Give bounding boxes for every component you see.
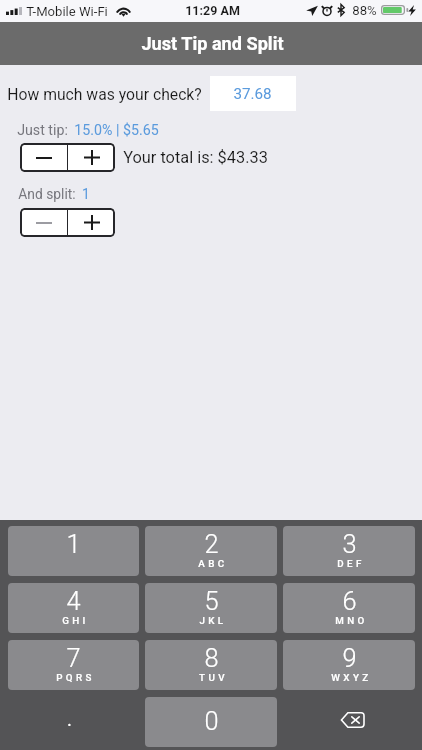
staticText: Your total is: $43.33 bbox=[123, 148, 268, 167]
staticText: 9 bbox=[342, 643, 357, 673]
staticText: 88% bbox=[352, 3, 377, 18]
button[interactable]: Backspace bbox=[283, 697, 415, 747]
button[interactable]: Decrease bbox=[20, 208, 67, 237]
button[interactable]: Increase bbox=[68, 143, 115, 172]
staticText: 8 bbox=[204, 643, 219, 673]
staticText: JKL bbox=[199, 615, 227, 626]
staticText: Just tip: bbox=[17, 122, 68, 139]
staticText: 37.68 bbox=[233, 85, 272, 103]
button[interactable]: 1 bbox=[8, 526, 139, 576]
button[interactable]: Increase bbox=[68, 208, 115, 237]
staticText: And split: bbox=[18, 186, 76, 202]
staticText: GHI bbox=[62, 615, 89, 626]
staticText: 11:29 AM bbox=[185, 3, 240, 18]
button[interactable]: 7 bbox=[8, 640, 139, 690]
staticText: 3 bbox=[342, 529, 357, 559]
staticText: 15.0% | $5.65 bbox=[74, 122, 159, 139]
button[interactable]: 3 bbox=[283, 526, 415, 576]
staticText: 7 bbox=[66, 643, 81, 673]
staticText: 6 bbox=[342, 586, 357, 616]
button[interactable]: 9 bbox=[283, 640, 415, 690]
staticText: ABC bbox=[198, 558, 228, 569]
button[interactable]: 8 bbox=[145, 640, 277, 690]
button[interactable]: 2 bbox=[145, 526, 277, 576]
staticText: 1 bbox=[66, 529, 81, 559]
button[interactable]: 6 bbox=[283, 583, 415, 633]
button[interactable]: Decimal point bbox=[8, 697, 139, 747]
staticText: DEF bbox=[337, 558, 365, 569]
button[interactable]: 4 bbox=[8, 583, 139, 633]
staticText: T-Mobile Wi-Fi bbox=[26, 4, 108, 19]
staticText: 1 bbox=[82, 186, 90, 202]
staticText: PQRS bbox=[56, 672, 95, 683]
button[interactable]: 37.68 bbox=[210, 76, 296, 111]
staticText: . bbox=[66, 702, 73, 732]
staticText: WXYZ bbox=[331, 672, 372, 683]
staticText: Just Tip and Split bbox=[141, 33, 284, 54]
button[interactable]: 0 bbox=[145, 697, 277, 747]
button[interactable]: 5 bbox=[145, 583, 277, 633]
staticText: 0 bbox=[204, 706, 219, 736]
button[interactable]: Decrease bbox=[20, 143, 67, 172]
staticText: MNO bbox=[335, 615, 368, 626]
staticText: 5 bbox=[204, 586, 219, 616]
staticText: 2 bbox=[204, 529, 219, 559]
staticText: TUV bbox=[199, 672, 228, 683]
staticText: 4 bbox=[66, 586, 81, 616]
staticText: How much was your check? bbox=[7, 85, 202, 103]
